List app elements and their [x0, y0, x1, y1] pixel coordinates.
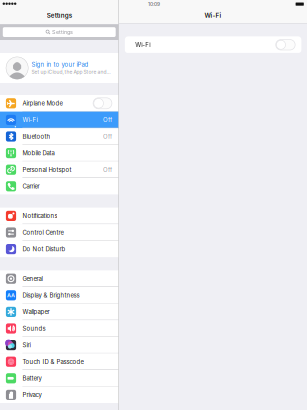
button[interactable]: Privacy — [0, 387, 118, 403]
staticText: Privacy — [22, 391, 41, 399]
staticText: Personal Hotspot — [22, 166, 71, 173]
staticText: Settings — [47, 12, 72, 19]
staticText: Off — [103, 133, 112, 140]
staticText: Wi-Fi — [22, 116, 37, 124]
staticText: Mobile Data — [22, 149, 54, 157]
button[interactable]: Do Not Disturb — [0, 241, 118, 257]
button[interactable]: Sounds — [0, 320, 118, 337]
button[interactable]: Siri — [0, 337, 118, 353]
button[interactable]: Wallpaper — [0, 304, 118, 320]
button[interactable]: Notifications — [0, 208, 118, 224]
staticText: Do Not Disturb — [22, 245, 65, 253]
button[interactable]: Settings — [3, 27, 116, 37]
staticText: Control Centre — [22, 229, 63, 236]
staticText: Notifications — [22, 212, 57, 220]
staticText: Siri — [22, 341, 30, 349]
staticText: Set up iCloud, the App Store and… — [31, 69, 110, 75]
staticText: AA — [7, 292, 15, 299]
button[interactable]: Personal Hotspot — [0, 161, 118, 178]
button[interactable]: General — [0, 270, 118, 287]
staticText: Wallpaper — [22, 308, 49, 316]
button[interactable]: Bluetooth — [0, 128, 118, 145]
button[interactable]: Airplane Mode — [0, 95, 118, 112]
staticText: Off — [103, 116, 112, 124]
button[interactable]: AA — [0, 287, 118, 304]
staticText: Off — [103, 166, 112, 173]
staticText: Wi-Fi — [135, 41, 150, 48]
staticText: Bluetooth — [22, 133, 50, 140]
staticText: General — [22, 275, 42, 282]
button[interactable]: Battery — [0, 370, 118, 387]
staticText: Settings — [52, 29, 73, 35]
button[interactable]: Wi-Fi — [125, 36, 301, 53]
button[interactable]: Sign in to your iPad — [0, 53, 118, 83]
staticText: Sign in to your iPad — [31, 61, 88, 68]
staticText: Sounds — [22, 325, 45, 332]
button[interactable]: Carrier — [0, 178, 118, 195]
staticText: 10:09 — [148, 1, 160, 7]
staticText: Battery — [22, 375, 41, 382]
staticText: Display & Brightness — [22, 292, 79, 299]
staticText: Touch ID & Passcode — [22, 358, 83, 365]
button[interactable]: Wi-Fi — [0, 112, 118, 128]
button[interactable]: Control Centre — [0, 224, 118, 241]
staticText: Airplane Mode — [22, 100, 62, 107]
staticText: Carrier — [22, 183, 39, 190]
staticText: Wi-Fi — [204, 12, 221, 19]
button[interactable]: Mobile Data — [0, 145, 118, 161]
button[interactable]: Touch ID & Passcode — [0, 353, 118, 370]
